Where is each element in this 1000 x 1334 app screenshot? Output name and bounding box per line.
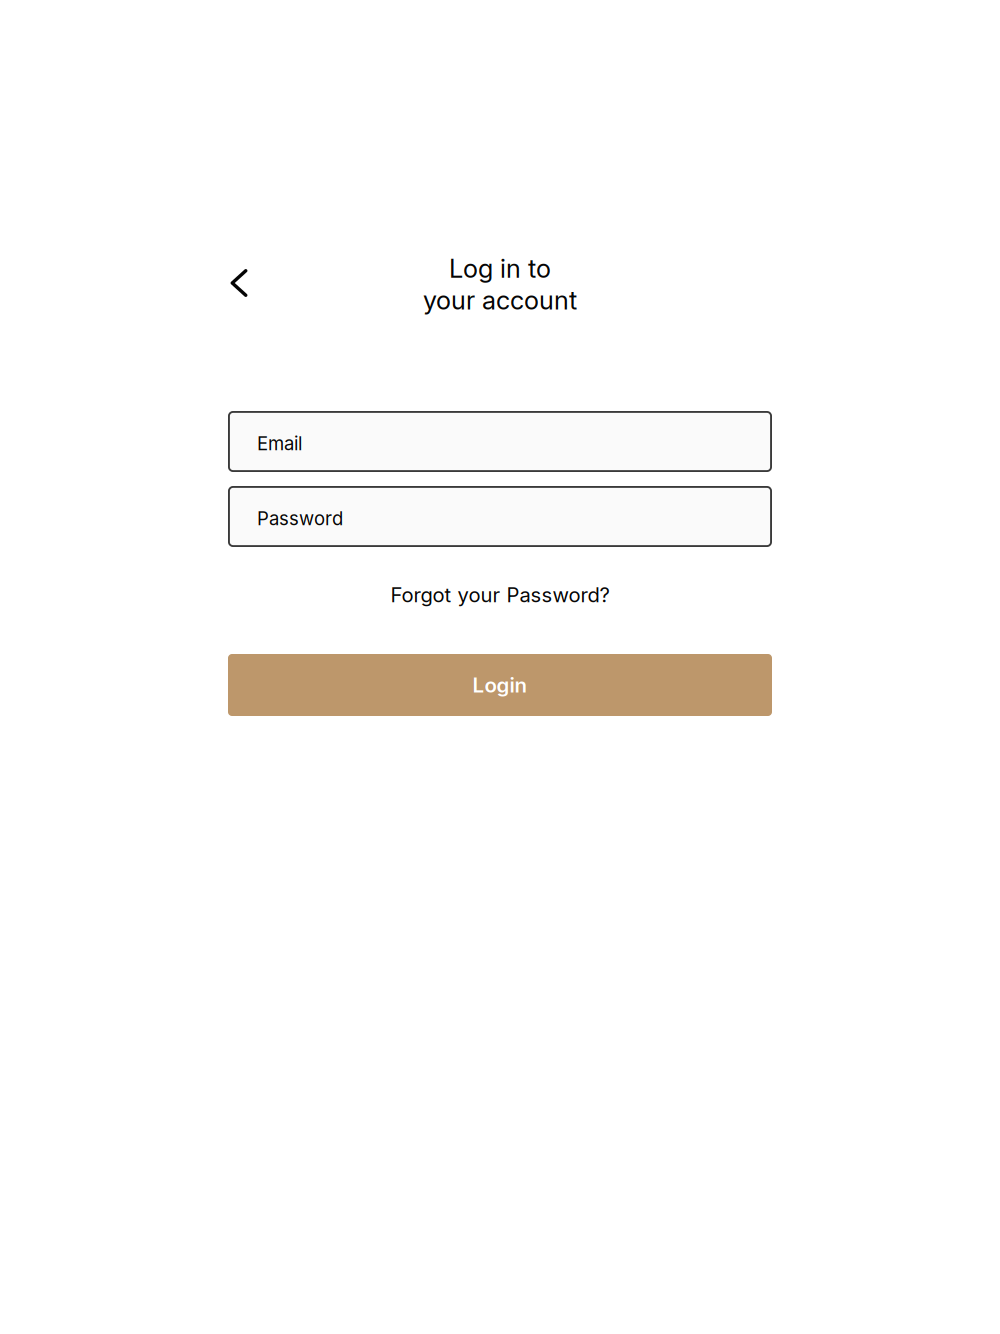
button[interactable]: Login [228,654,772,716]
button[interactable]: Forgot your Password? [228,573,772,617]
staticText: Email [257,432,302,455]
button[interactable]: Back [213,257,265,309]
staticText: Forgot your Password? [390,583,609,607]
button[interactable]: Email [228,411,772,472]
staticText: Log in to [449,253,551,284]
staticText: Password [257,507,343,530]
staticText: Login [472,673,527,697]
staticText: your account [423,285,577,316]
button[interactable]: Password [228,486,772,547]
